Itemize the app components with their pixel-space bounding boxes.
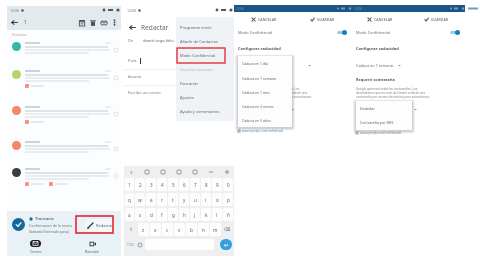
button[interactable] (7, 67, 121, 103)
button[interactable]: l (212, 208, 222, 221)
staticText: q (128, 197, 131, 203)
button[interactable]: 2 (135, 178, 145, 191)
button[interactable]: m (210, 223, 221, 236)
button[interactable]: k (201, 208, 211, 221)
button[interactable]: Más opciones (109, 17, 120, 28)
button[interactable]: ñ (223, 208, 233, 221)
staticText: 1 (24, 19, 27, 26)
button[interactable] (7, 103, 121, 138)
button[interactable]: Correo (7, 238, 64, 256)
button[interactable]: Herramienta (144, 169, 150, 175)
button[interactable]: q (125, 193, 134, 206)
button[interactable]: p (223, 193, 233, 206)
button[interactable]: Caduca en 1 mes (238, 85, 292, 99)
button[interactable]: 7 (190, 178, 200, 191)
staticText: 9 (216, 182, 219, 188)
staticText: ñ (227, 212, 230, 218)
button[interactable] (7, 39, 121, 67)
button[interactable]: ⇧ (125, 223, 137, 236)
staticText: u (194, 197, 197, 203)
button[interactable]: GUARDAR (408, 12, 465, 26)
button[interactable]: j (190, 208, 200, 221)
button[interactable]: a (125, 208, 134, 221)
button[interactable]: 5 (168, 178, 178, 191)
button[interactable]: 6 (179, 178, 189, 191)
button[interactable]: 8 (201, 178, 211, 191)
button[interactable]: r (157, 193, 167, 206)
button[interactable]: h (179, 208, 189, 221)
staticText: b (190, 227, 193, 233)
button[interactable]: Contraseña por SMS (356, 115, 412, 130)
button[interactable]: Estándar (356, 101, 412, 115)
button[interactable]: n (198, 223, 209, 236)
staticText: Modo Confidencial (238, 30, 273, 35)
button[interactable]: Intro (220, 239, 232, 250)
staticText: 6 (183, 182, 186, 188)
staticText: www.ejemplo.com/confidencial (360, 131, 402, 135)
button[interactable]: Herramienta (192, 169, 198, 175)
button[interactable]: Marcar como leído (98, 17, 109, 28)
button[interactable]: Caduca en 5 años (238, 113, 292, 127)
button[interactable]: o (212, 193, 222, 206)
button[interactable]: Caduca en 1 semana (352, 59, 465, 71)
button[interactable]: i (201, 193, 211, 206)
button[interactable]: Descartar (176, 76, 234, 90)
button[interactable]: f (157, 208, 167, 221)
button[interactable]: 1 (125, 178, 134, 191)
button[interactable]: Ajustes del teclado (224, 169, 230, 175)
button[interactable]: z (138, 223, 149, 236)
button[interactable]: Caduca en 1 semana (238, 71, 292, 85)
button[interactable]: Caduca en 1 día (238, 56, 292, 71)
staticText: Asunto (128, 74, 142, 79)
button[interactable]: s (135, 208, 145, 221)
button[interactable]: Redactar (87, 219, 113, 232)
button[interactable]: Herramienta (160, 169, 166, 175)
button[interactable]: 0 (223, 178, 233, 191)
button[interactable]: Minimizar (208, 169, 214, 175)
button[interactable]: Añadir de Contactos (176, 34, 234, 48)
button[interactable]: x (150, 223, 161, 236)
button[interactable]: t (168, 193, 178, 206)
button[interactable]: v (174, 223, 185, 236)
button[interactable]: u (190, 193, 200, 206)
button[interactable]: Modo Confidencial (176, 48, 234, 62)
button[interactable]: Caduca en 1 día (234, 59, 352, 71)
button[interactable]: 9 (212, 178, 222, 191)
button[interactable]: b (186, 223, 197, 236)
button[interactable]: Atrás (9, 17, 20, 28)
button[interactable]: e (146, 193, 156, 206)
button[interactable]: GUARDAR (293, 12, 352, 26)
button[interactable]: CANCELAR (352, 12, 408, 26)
button[interactable]: Programar envío (176, 20, 234, 34)
button[interactable]: Herramienta (176, 169, 182, 175)
button[interactable]: d (146, 208, 156, 221)
button[interactable]: 4 (157, 178, 167, 191)
button[interactable]: Emoji (136, 239, 144, 250)
button[interactable]: Ayuda y comentarios (176, 104, 234, 118)
button[interactable]: Atrás (128, 23, 137, 32)
button[interactable]: c (162, 223, 173, 236)
staticText: Modo Confidencial (180, 53, 216, 58)
staticText: Recientes (12, 33, 27, 37)
button[interactable]: ⌫ (222, 223, 233, 236)
button[interactable]: w (135, 193, 145, 206)
button[interactable]: Reunión (64, 238, 121, 256)
button[interactable]: Modo Confidencial (352, 26, 465, 39)
button[interactable] (7, 165, 121, 197)
button[interactable]: Eliminar (87, 17, 98, 28)
button[interactable]: g (168, 208, 178, 221)
button[interactable]: Guardar borrador (176, 62, 234, 76)
button[interactable]: 3 (146, 178, 156, 191)
staticText: Caduca en 1 semana (356, 63, 393, 68)
button[interactable]: Archivar (76, 17, 87, 28)
button[interactable]: y (179, 193, 189, 206)
button[interactable]: CANCELAR (234, 12, 293, 26)
button[interactable]: ?123 (125, 239, 136, 250)
button[interactable] (7, 138, 121, 165)
staticText: contraseña por correo electrónico para a… (238, 95, 312, 99)
button[interactable]: Anterior (128, 169, 134, 175)
button[interactable]: Ajustes (176, 90, 234, 104)
button[interactable]: Caduca en 3 meses (238, 99, 292, 113)
button[interactable]: Modo Confidencial (234, 26, 352, 39)
